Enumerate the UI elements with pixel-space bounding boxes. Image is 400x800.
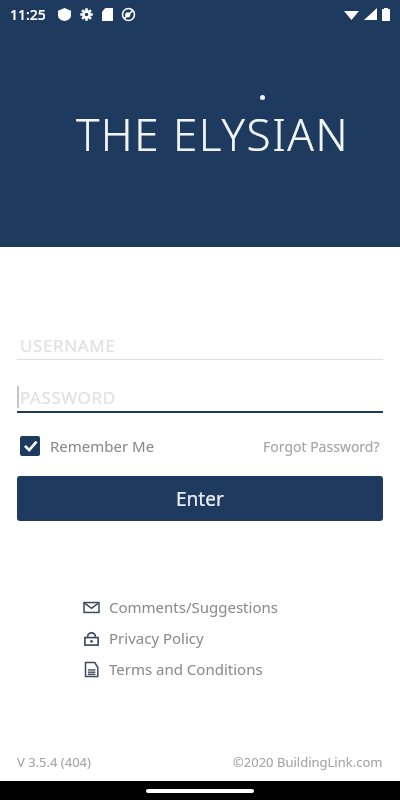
other: Privacy Policy: [84, 631, 99, 646]
staticText: ©2020 BuildingLink.com: [233, 753, 383, 771]
button[interactable]: PASSWORD: [17, 383, 383, 413]
staticText: V 3.5.4 (404): [17, 753, 91, 771]
button[interactable]: Remember Me: [18, 430, 157, 462]
staticText: USERNAME: [20, 334, 116, 357]
button[interactable]: Enter: [17, 476, 383, 521]
staticText: 11:25: [10, 5, 46, 24]
other: Terms and Conditions: [84, 662, 99, 677]
staticText: Comments/Suggestions: [109, 597, 316, 617]
staticText: Terms and Conditions: [109, 659, 316, 679]
staticText: Enter: [176, 486, 224, 512]
button[interactable]: Forgot Password?: [261, 431, 382, 462]
button[interactable]: Comments and Suggestions: [80, 595, 320, 619]
other: Comments and Suggestions: [84, 600, 99, 615]
button[interactable]: Terms and Conditions: [80, 657, 320, 681]
staticText: PASSWORD: [20, 386, 116, 409]
button[interactable]: USERNAME: [17, 331, 383, 360]
staticText: Forgot Password?: [263, 437, 380, 456]
button[interactable]: Privacy Policy: [80, 626, 320, 650]
staticText: THE ELYSIAN: [76, 104, 350, 164]
staticText: Privacy Policy: [109, 628, 316, 648]
staticText: Remember Me: [50, 436, 155, 456]
